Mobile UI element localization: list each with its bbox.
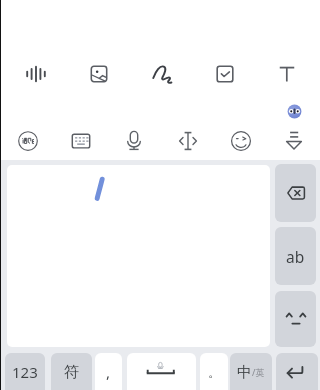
button[interactable]: ab (275, 227, 316, 285)
button[interactable]: Text (273, 60, 301, 88)
button[interactable]: Enter (276, 353, 318, 390)
staticText: ab (286, 246, 305, 267)
button[interactable]: Handwriting (148, 60, 176, 88)
button[interactable]: , (95, 353, 122, 390)
staticText: 。 (208, 364, 221, 380)
staticText: 中 (237, 363, 252, 382)
button[interactable]: 。 (200, 353, 228, 390)
button[interactable]: Backspace (275, 164, 316, 222)
button[interactable]: 符 (51, 353, 92, 390)
button[interactable]: Move cursor (175, 128, 201, 154)
button[interactable]: Voice input (121, 128, 147, 154)
button[interactable]: Keyboard (68, 128, 94, 154)
button[interactable]: Hide keyboard (281, 128, 307, 154)
button[interactable] (7, 165, 270, 347)
staticText: , (106, 362, 111, 382)
button[interactable]: Voice wave (22, 60, 50, 88)
button[interactable]: 中 (230, 353, 272, 390)
button[interactable]: Emoticon (275, 291, 316, 347)
button[interactable]: Select (211, 60, 239, 88)
staticText: 符 (64, 363, 79, 382)
button[interactable]: Avatar (287, 104, 302, 119)
button[interactable]: Insert image (85, 60, 113, 88)
staticText: 123 (12, 362, 38, 382)
button[interactable]: Input method (15, 128, 41, 154)
button[interactable]: Space (127, 353, 196, 390)
staticText: /英 (252, 366, 265, 378)
button[interactable]: 123 (5, 353, 45, 390)
button[interactable]: Emoji (228, 128, 254, 154)
